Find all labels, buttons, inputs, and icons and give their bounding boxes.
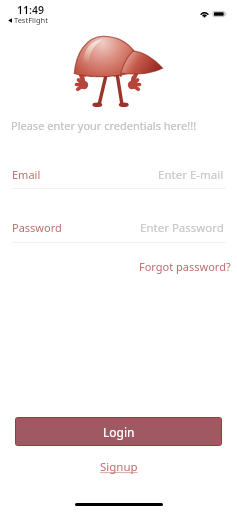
staticText: 11:49	[17, 3, 44, 17]
button[interactable]: Signup	[100, 459, 138, 475]
staticText: Signup	[100, 459, 138, 475]
staticText: TestFlight	[14, 15, 48, 25]
staticText: Enter E-mail	[158, 167, 224, 183]
staticText: Enter Password	[140, 220, 224, 236]
other: Wi-Fi	[200, 11, 209, 17]
button[interactable]: Password	[0, 215, 237, 248]
staticText: Login	[103, 424, 135, 440]
staticText: Email	[12, 167, 41, 182]
staticText: Forgot password?	[139, 259, 231, 274]
button[interactable]: Forgot password?	[139, 259, 231, 274]
button[interactable]: Email	[0, 162, 237, 194]
button[interactable]: Login	[16, 418, 221, 445]
staticText: Please enter your credentials here!!!	[11, 118, 197, 133]
other: Battery	[213, 11, 228, 17]
staticText: Password	[12, 220, 62, 235]
